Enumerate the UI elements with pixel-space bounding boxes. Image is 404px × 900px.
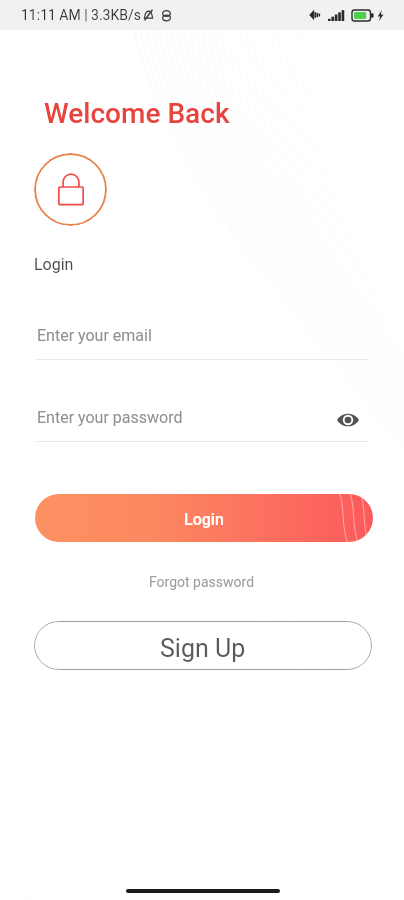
button[interactable]: Show password (336, 408, 360, 432)
staticText: Welcome Back (44, 97, 230, 130)
staticText: Login (184, 510, 224, 529)
button[interactable]: Sign Up (34, 621, 372, 670)
button[interactable]: Login (35, 494, 373, 542)
staticText: Enter your password (37, 408, 183, 427)
staticText: 11:11 AM | 3.3KB/s (21, 7, 141, 23)
button[interactable]: Enter your email (36, 318, 368, 360)
staticText: Enter your email (37, 326, 152, 345)
staticText: Login (34, 255, 74, 274)
button[interactable]: Forgot password (149, 574, 255, 590)
staticText: Sign Up (160, 634, 246, 663)
button[interactable]: Enter your password (36, 400, 368, 442)
